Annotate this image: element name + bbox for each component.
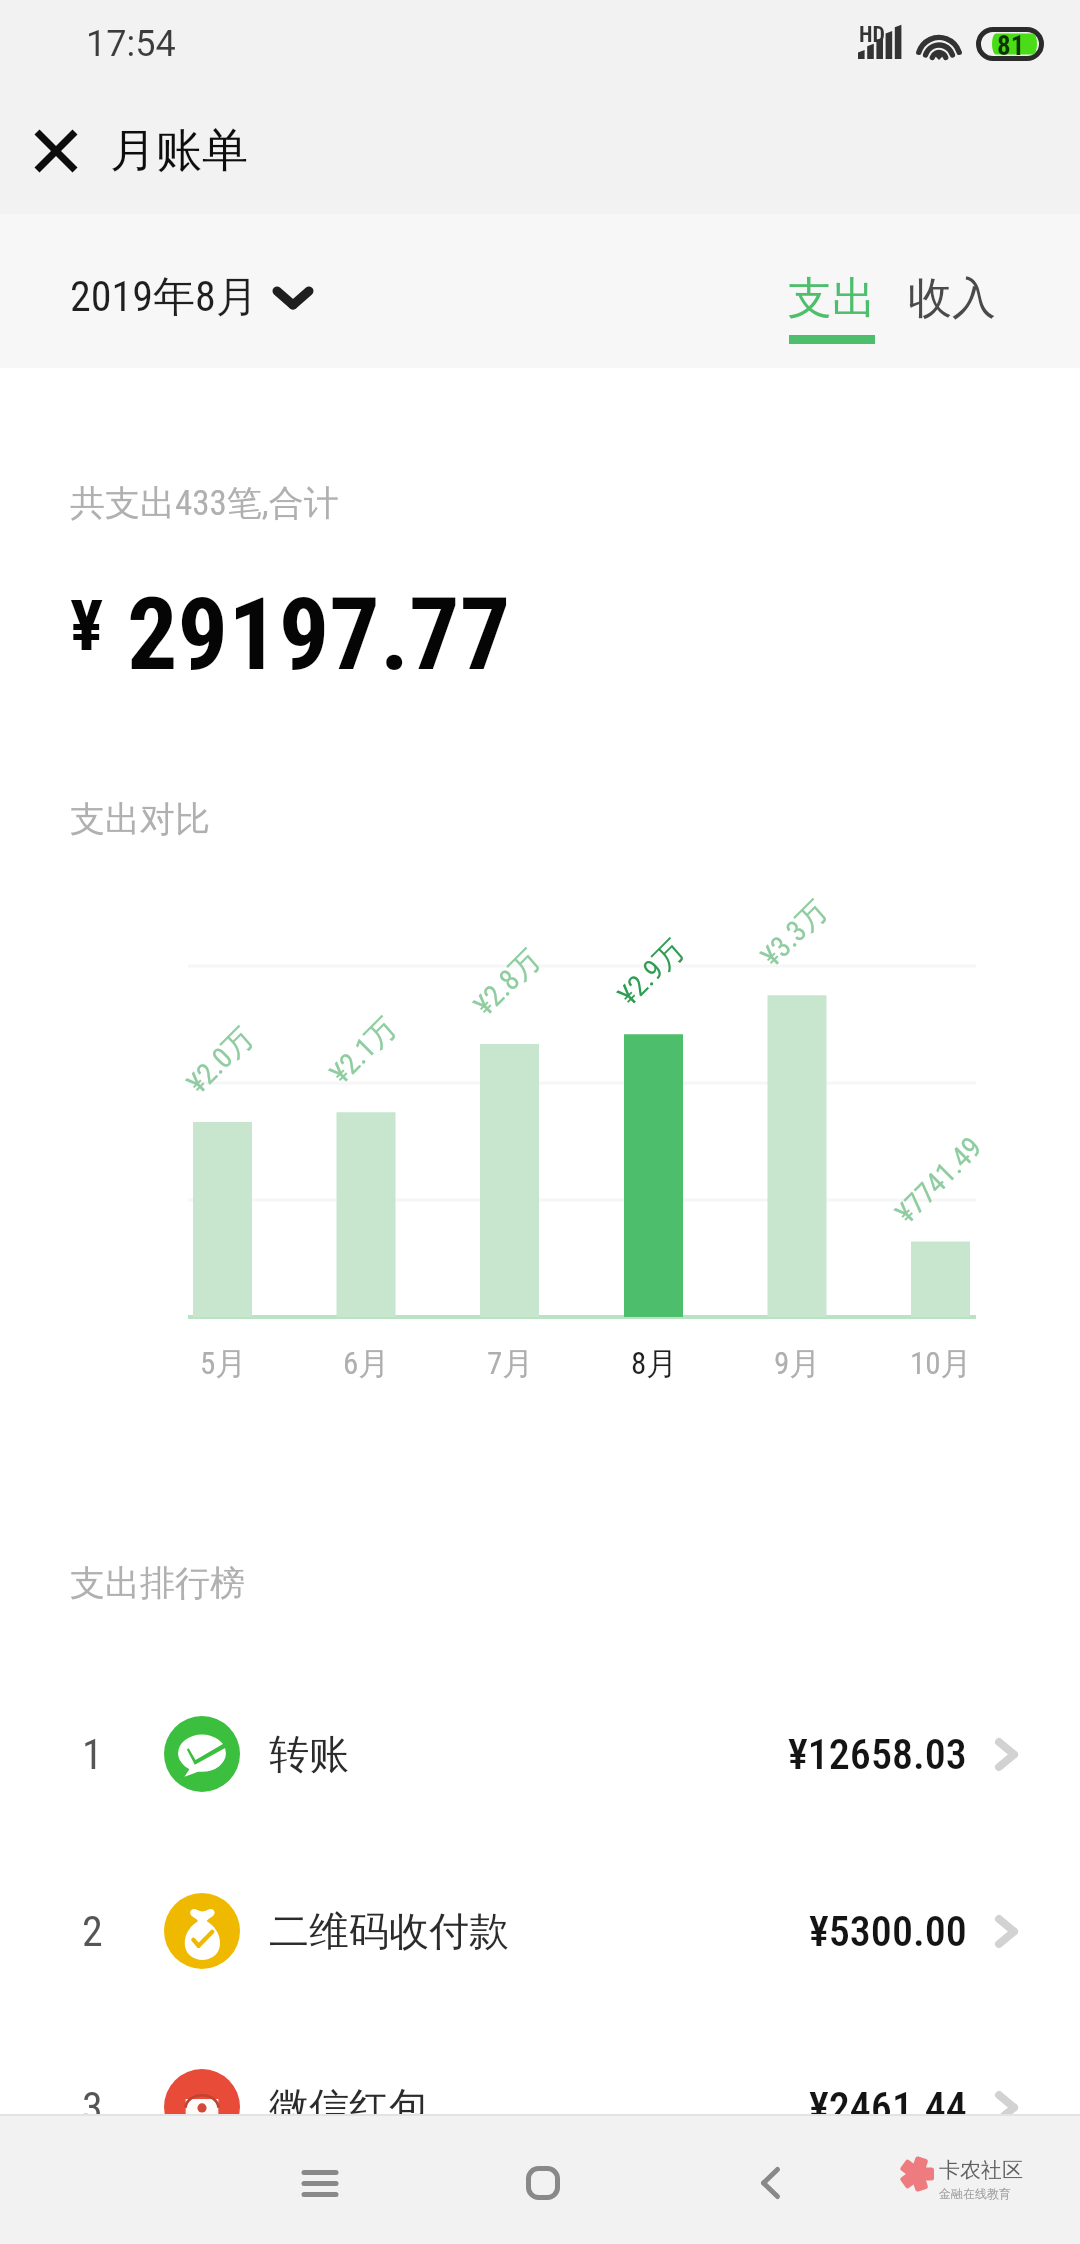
staticText: 17:54 <box>86 23 176 65</box>
staticText: ¥2461.44 <box>809 2083 967 2132</box>
staticText: ¥3.3万 <box>753 892 835 974</box>
staticText: ¥2.9万 <box>610 931 692 1013</box>
staticText: 微信红包 <box>269 2082 429 2132</box>
button[interactable]: 2 <box>0 1871 1080 1991</box>
staticText: 5月 <box>200 1344 247 1383</box>
staticText: 转账 <box>269 1729 349 1779</box>
staticText: 金融在线教育 <box>939 2186 1011 2201</box>
staticText: 1 <box>82 1730 103 1779</box>
staticText: 2 <box>82 1907 103 1956</box>
button[interactable]: 3 <box>0 2047 1080 2167</box>
staticText: 支出排行榜 <box>70 1561 245 1605</box>
button[interactable]: 收入 <box>896 230 1008 368</box>
staticText: 3 <box>82 2083 103 2132</box>
button[interactable]: Close <box>0 88 110 214</box>
staticText: 二维码收付款 <box>269 1906 509 1956</box>
staticText: 支出 <box>788 271 876 326</box>
staticText: 收入 <box>908 271 996 326</box>
button[interactable]: Back <box>715 2128 825 2238</box>
staticText: 2019年8月 <box>70 271 258 324</box>
staticText: 7月 <box>487 1344 534 1383</box>
staticText: 6月 <box>343 1344 390 1383</box>
button[interactable]: Home <box>488 2128 598 2238</box>
staticText: 81 <box>997 30 1025 62</box>
staticText: ¥12658.03 <box>788 1730 967 1779</box>
button[interactable]: Menu <box>265 2128 375 2238</box>
staticText: 29197.77 <box>127 576 511 693</box>
staticText: ¥5300.00 <box>809 1907 967 1956</box>
staticText: 月账单 <box>110 122 248 180</box>
staticText: 10月 <box>910 1344 972 1383</box>
staticText: 共支出433笔,合计 <box>70 481 339 525</box>
staticText: ¥7741.49 <box>889 1130 988 1230</box>
button[interactable]: 2019年8月 <box>70 271 312 324</box>
button[interactable]: 支出 <box>776 230 888 368</box>
staticText: ¥ <box>70 585 104 667</box>
staticText: 9月 <box>774 1344 821 1383</box>
staticText: ¥2.0万 <box>179 1019 261 1101</box>
staticText: 8月 <box>631 1344 678 1383</box>
staticText: ¥2.8万 <box>466 941 548 1023</box>
staticText: HD <box>859 22 885 48</box>
staticText: 支出对比 <box>70 797 210 841</box>
staticText: 卡农社区 <box>939 2157 1023 2183</box>
button[interactable]: 1 <box>0 1694 1080 1814</box>
staticText: ¥2.1万 <box>322 1009 404 1091</box>
